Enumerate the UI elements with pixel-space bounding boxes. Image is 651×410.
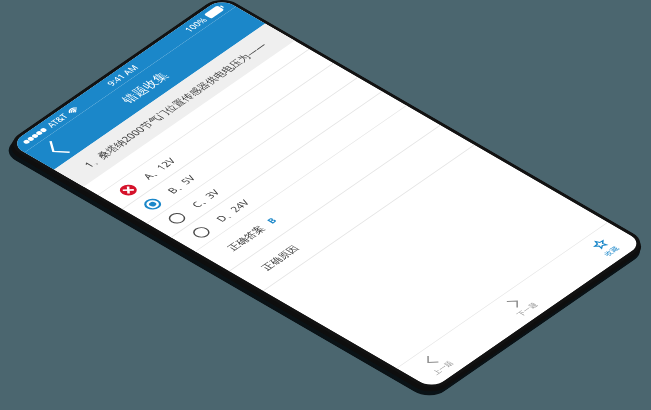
staticText: D、24V (212, 197, 252, 224)
staticText: 正确答案 (224, 224, 268, 252)
button[interactable]: Back (24, 129, 88, 170)
staticText: 9:41 AM (104, 63, 142, 88)
button[interactable]: 下一题 (481, 281, 559, 331)
staticText: 正确原因 (258, 243, 302, 272)
staticText: 上一题 (430, 359, 456, 376)
staticText: 1、桑塔纳2000节气门位置传感器供电电压为—— (80, 40, 270, 169)
staticText: 收藏 (602, 245, 622, 258)
staticText: B (263, 215, 280, 225)
staticText: C、3V (188, 187, 223, 209)
button[interactable]: D、24V (171, 91, 406, 251)
staticText: AT&T (44, 112, 71, 129)
button[interactable]: C、3V (147, 77, 382, 237)
button[interactable]: A、12V (98, 49, 333, 209)
button[interactable]: 正确原因 (229, 125, 474, 291)
button[interactable]: B、5V (123, 63, 358, 223)
staticText: A、12V (139, 155, 179, 181)
button[interactable]: 正确答案 (196, 106, 440, 271)
button[interactable]: 收藏 (566, 222, 644, 272)
staticText: B、5V (164, 173, 198, 195)
staticText: 错题收集 (118, 70, 173, 106)
button[interactable]: 上一题 (397, 339, 475, 389)
staticText: 下一题 (515, 301, 541, 318)
staticText: 100% (181, 15, 210, 34)
